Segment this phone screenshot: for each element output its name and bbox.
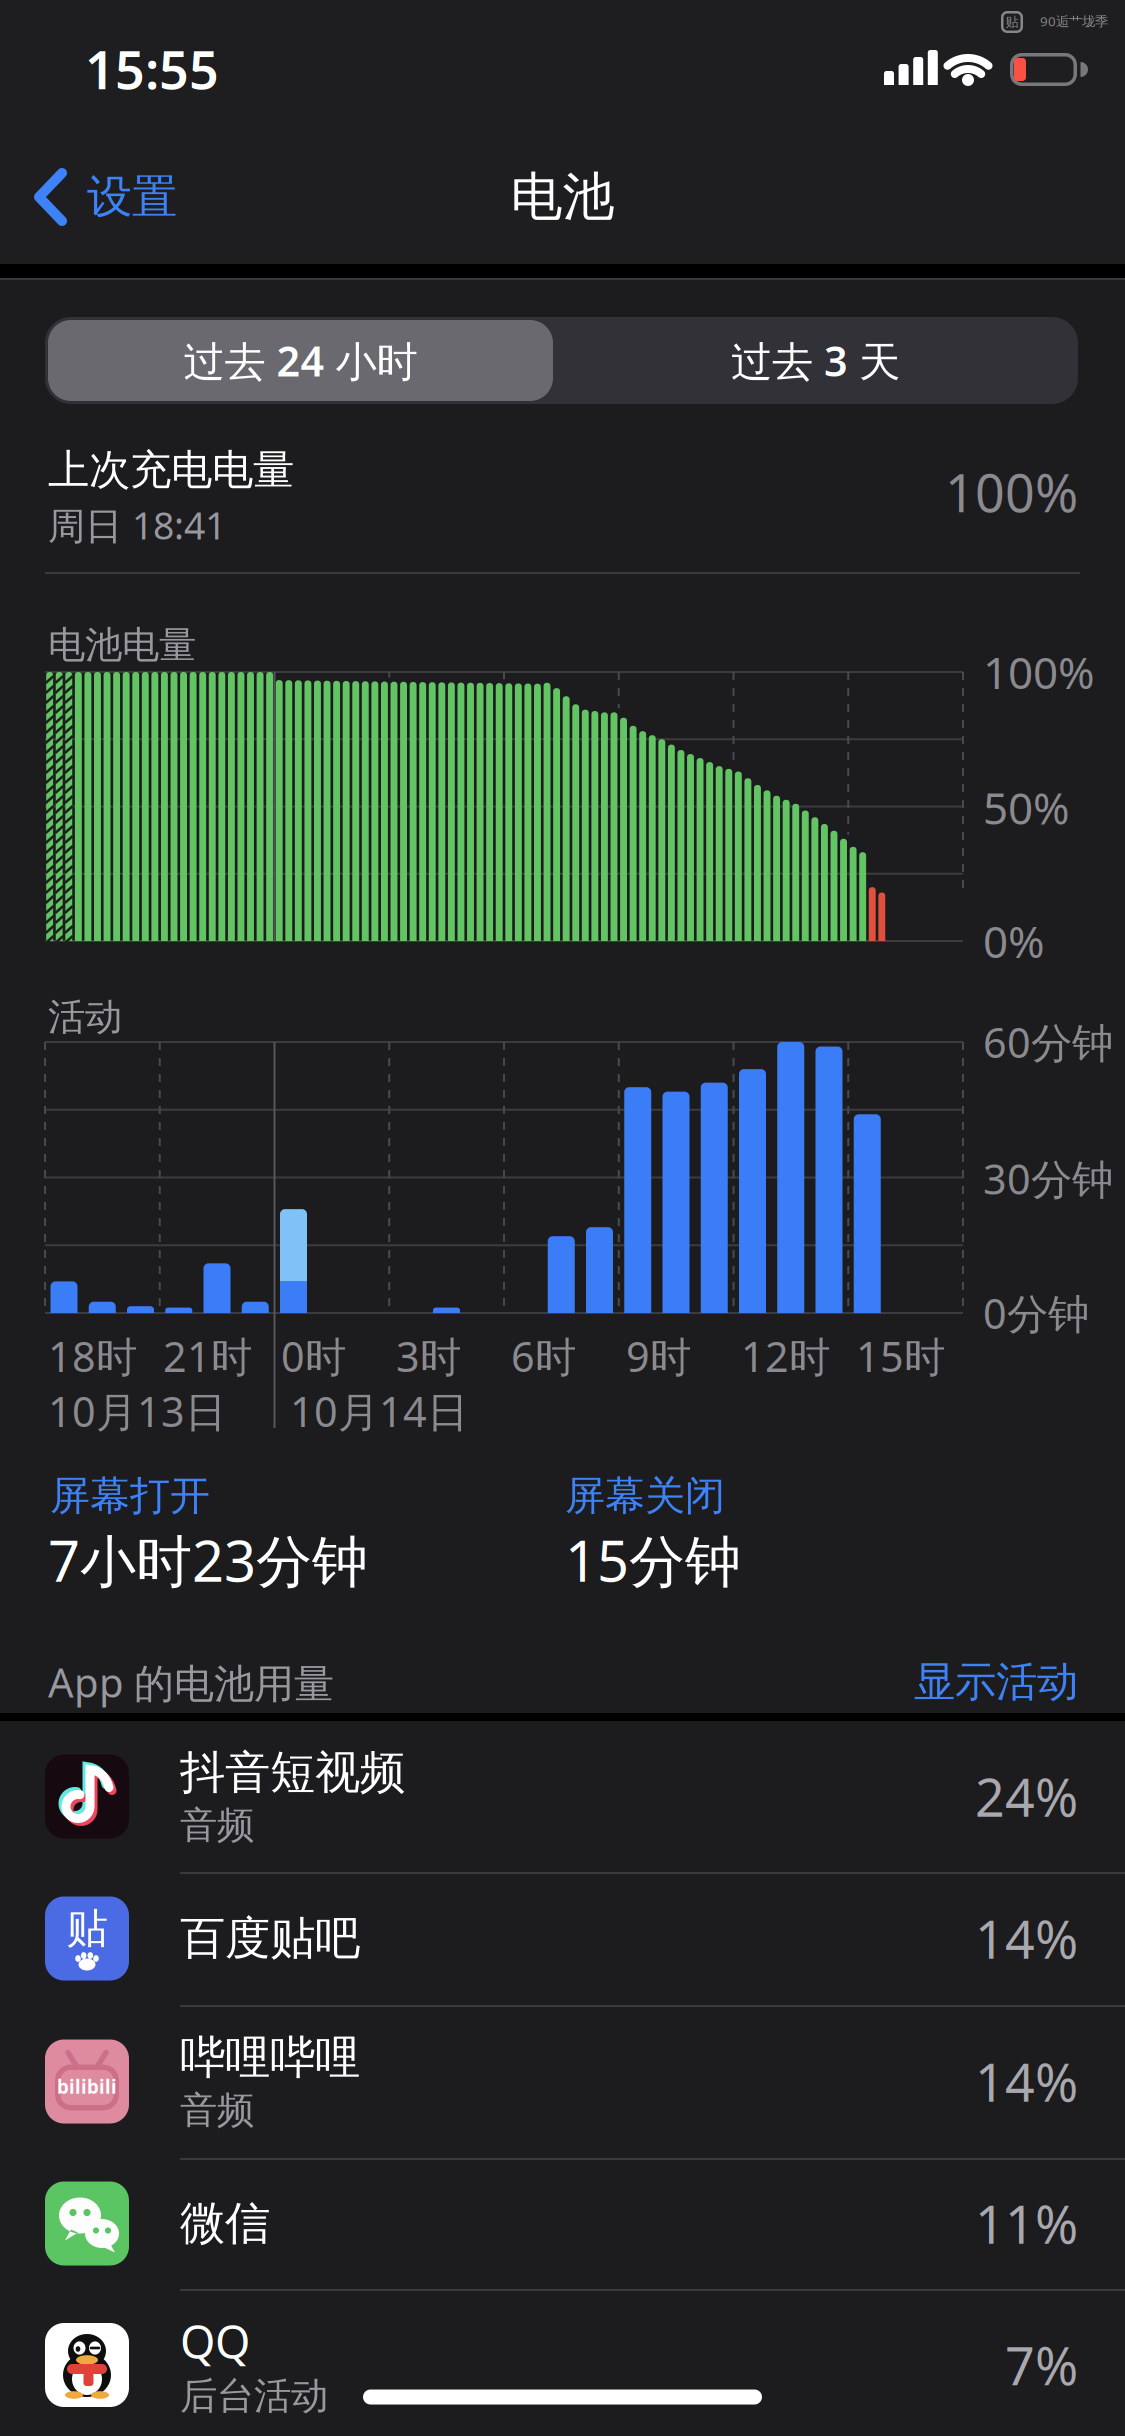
- staticText: 微信: [180, 2196, 270, 2251]
- staticText: 屏幕关闭: [565, 1471, 725, 1520]
- staticText: 过去 3 天: [731, 333, 900, 388]
- button[interactable]: 显示活动: [778, 1657, 1078, 1707]
- staticText: 18时: [48, 1329, 137, 1383]
- staticText: 0分钟: [983, 1286, 1089, 1340]
- staticText: 21时: [163, 1329, 252, 1383]
- button[interactable]: bilibili: [0, 2005, 1125, 2158]
- staticText: 3时: [396, 1329, 461, 1383]
- staticText: 电池: [510, 165, 614, 229]
- button[interactable]: 过去 3 天: [563, 320, 1068, 401]
- staticText: 14%: [975, 2047, 1078, 2116]
- staticText: 周日 18:41: [48, 500, 226, 550]
- staticText: 15分钟: [565, 1523, 741, 1597]
- button[interactable]: 抖音短视频: [0, 1721, 1125, 1872]
- staticText: 音频: [180, 1802, 254, 1848]
- staticText: 贴: [66, 1903, 107, 1954]
- staticText: 9时: [626, 1329, 691, 1383]
- button[interactable]: 微信: [0, 2158, 1125, 2289]
- staticText: 60分钟: [983, 1015, 1113, 1069]
- staticText: 0时: [281, 1329, 346, 1383]
- staticText: 6时: [511, 1329, 576, 1383]
- staticText: 15时: [856, 1329, 945, 1383]
- staticText: 抖音短视频: [180, 1745, 405, 1800]
- button[interactable]: 返回设置: [33, 168, 177, 226]
- staticText: 30分钟: [983, 1151, 1113, 1206]
- staticText: 10月14日: [290, 1384, 468, 1438]
- staticText: 7%: [1005, 2330, 1078, 2400]
- staticText: 10月13日: [48, 1384, 226, 1438]
- staticText: 90逅艹垅季: [1040, 12, 1108, 30]
- staticText: 100%: [945, 457, 1078, 527]
- staticText: 7小时23分钟: [48, 1523, 368, 1597]
- button[interactable]: QQ: [0, 2289, 1125, 2436]
- staticText: 屏幕打开: [50, 1471, 210, 1520]
- staticText: QQ: [180, 2311, 250, 2371]
- staticText: 14%: [975, 1904, 1078, 1973]
- staticText: 24%: [975, 1762, 1078, 1831]
- staticText: 后台活动: [180, 2373, 328, 2419]
- staticText: 12时: [741, 1329, 830, 1383]
- staticText: 11%: [975, 2189, 1078, 2258]
- button[interactable]: 贴: [0, 1872, 1125, 2005]
- staticText: 100%: [983, 643, 1095, 701]
- staticText: 15:55: [85, 34, 219, 104]
- staticText: bilibili: [57, 2074, 117, 2099]
- staticText: 活动: [48, 994, 122, 1040]
- staticText: 百度贴吧: [180, 1911, 360, 1966]
- staticText: 电池电量: [48, 622, 196, 668]
- staticText: 上次充电电量: [48, 445, 294, 495]
- staticText: App 的电池用量: [48, 1655, 334, 1709]
- staticText: 过去 24 小时: [183, 333, 417, 388]
- staticText: 哔哩哔哩: [180, 2030, 360, 2085]
- staticText: 50%: [983, 778, 1070, 837]
- staticText: 设置: [87, 169, 177, 225]
- staticText: 显示活动: [914, 1657, 1078, 1707]
- staticText: 0%: [983, 912, 1045, 970]
- staticText: 音频: [180, 2087, 254, 2133]
- staticText: 贴: [1005, 14, 1018, 30]
- button[interactable]: 过去 24 小时: [48, 320, 553, 401]
